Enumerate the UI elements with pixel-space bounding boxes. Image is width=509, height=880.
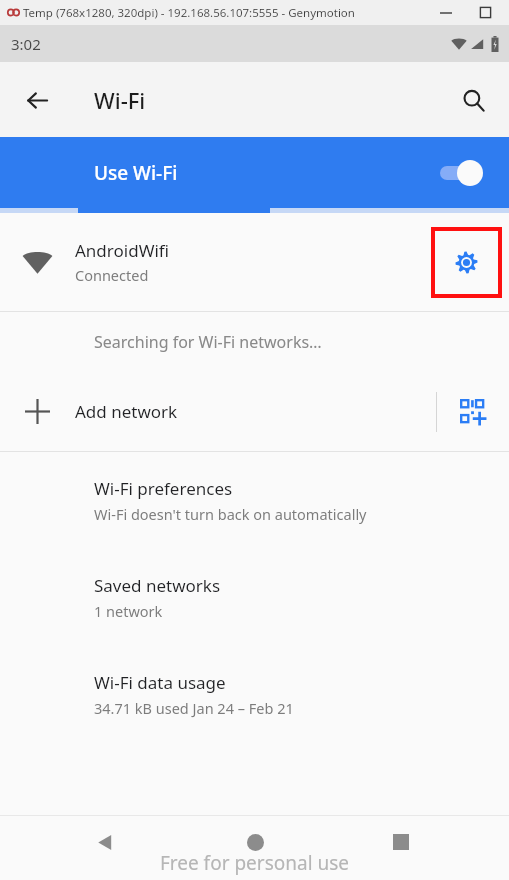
- button[interactable]: Saved networks: [0, 549, 509, 646]
- staticText: Wi-Fi: [94, 85, 146, 115]
- button[interactable]: Add network: [0, 372, 436, 451]
- button[interactable]: Recent apps: [377, 818, 425, 866]
- button[interactable]: Use Wi-Fi: [0, 137, 509, 208]
- button[interactable]: AndroidWifi: [0, 213, 509, 311]
- staticText: 34.71 kB used Jan 24 – Feb 21: [94, 698, 294, 718]
- button[interactable]: Network details settings: [431, 227, 502, 298]
- staticText: Use Wi-Fi: [94, 160, 437, 186]
- staticText: Connected: [75, 265, 149, 285]
- staticText: Free for personal use: [0, 850, 509, 876]
- button[interactable]: Scan QR code to add network: [437, 372, 509, 451]
- staticText: Wi-Fi doesn't turn back on automatically: [94, 504, 367, 524]
- staticText: Add network: [75, 400, 178, 423]
- button[interactable]: Home: [231, 818, 279, 866]
- button[interactable]: Search: [449, 76, 497, 124]
- button[interactable]: Back: [81, 818, 129, 866]
- staticText: Wi-Fi data usage: [94, 671, 226, 694]
- staticText: 1 network: [94, 601, 163, 621]
- staticText: Searching for Wi-Fi networks…: [94, 331, 322, 353]
- staticText: 3:02: [11, 34, 41, 54]
- staticText: Temp (768x1280, 320dpi) - 192.168.56.107…: [23, 5, 355, 21]
- button[interactable]: Navigate up: [13, 76, 61, 124]
- button[interactable]: Wi-Fi preferences: [0, 452, 509, 549]
- staticText: Wi-Fi preferences: [94, 477, 233, 500]
- staticText: Saved networks: [94, 574, 221, 597]
- button[interactable]: Wi-Fi data usage: [0, 646, 509, 743]
- staticText: AndroidWifi: [75, 239, 170, 262]
